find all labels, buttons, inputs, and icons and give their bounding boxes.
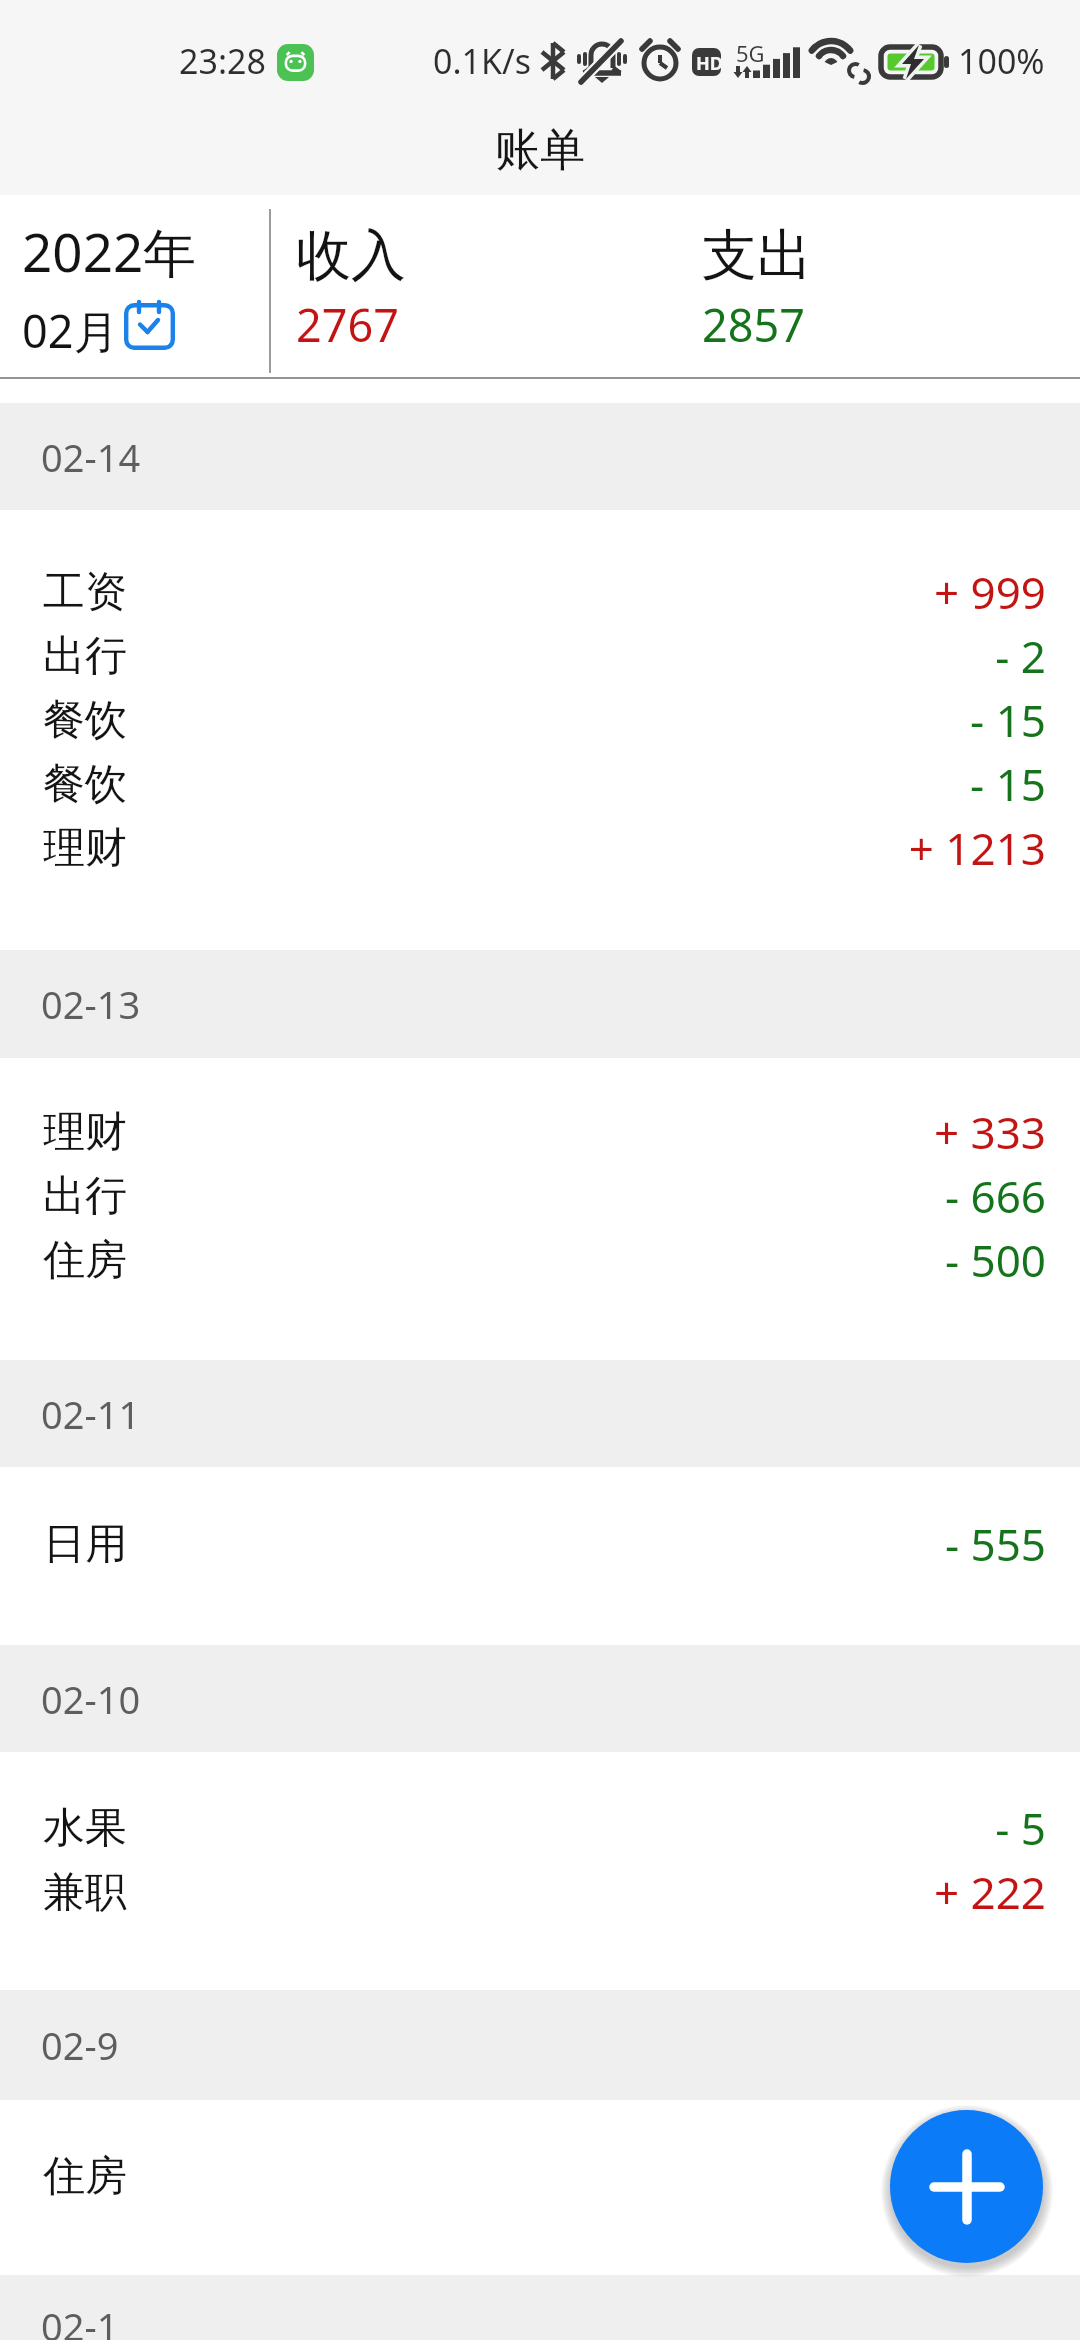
staticText: 日用 (43, 1518, 127, 1571)
button[interactable]: 工资 (0, 560, 1080, 624)
staticText: 餐饮 (43, 694, 127, 747)
staticText: - 555 (128, 1514, 1046, 1574)
button[interactable]: 出行 (0, 1164, 1080, 1228)
staticText: - 500 (128, 1230, 1046, 1290)
staticText: 餐饮 (43, 758, 127, 811)
button[interactable]: 日用 (0, 1512, 1080, 1576)
staticText: + 333 (128, 1102, 1046, 1162)
button[interactable]: 02-11 (0, 1360, 1080, 1467)
staticText: 2767 (296, 294, 399, 355)
button[interactable]: 02-1 (0, 2275, 1080, 2340)
button[interactable]: 02-10 (0, 1645, 1080, 1752)
staticText: 水果 (43, 1802, 127, 1855)
staticText: 02-1 (41, 2300, 119, 2340)
staticText: HD (696, 51, 723, 76)
staticText: 住房 (43, 2150, 127, 2203)
staticText: - 15 (128, 754, 1046, 814)
staticText: 理财 (43, 822, 127, 875)
button[interactable]: 餐饮 (0, 688, 1080, 752)
staticText: 2857 (702, 294, 805, 355)
button[interactable]: 02-14 (0, 403, 1080, 510)
staticText: 住房 (43, 1234, 127, 1287)
staticText: 100% (958, 38, 1045, 84)
button[interactable]: 02-13 (0, 950, 1080, 1058)
button[interactable]: 水果 (0, 1796, 1080, 1860)
staticText: 2022年 (22, 215, 197, 287)
button[interactable]: 兼职 (0, 1860, 1080, 1924)
staticText: 理财 (43, 1106, 127, 1159)
staticText: 工资 (43, 566, 127, 619)
staticText: - 5 (128, 1798, 1046, 1858)
staticText: 02-11 (41, 1388, 141, 1440)
staticText (128, 2146, 1046, 2206)
staticText: 出行 (43, 630, 127, 683)
staticText: 02-9 (41, 2019, 119, 2071)
staticText: 02-10 (41, 1673, 141, 1725)
button[interactable]: Add record (890, 2110, 1043, 2263)
staticText: 5G (736, 38, 765, 68)
staticText: + 999 (128, 562, 1046, 622)
staticText: 23:28 (179, 38, 266, 84)
button[interactable]: 理财 (0, 816, 1080, 880)
staticText: 出行 (43, 1170, 127, 1223)
staticText: 收入 (296, 221, 406, 290)
staticText: 账单 (495, 122, 585, 179)
staticText: 兼职 (43, 1866, 127, 1919)
staticText: 02月 (22, 300, 119, 361)
staticText: + 1213 (128, 818, 1046, 878)
staticText: - 15 (128, 690, 1046, 750)
staticText: - 2 (128, 626, 1046, 686)
button[interactable]: 02-9 (0, 1990, 1080, 2100)
staticText: 支出 (702, 221, 812, 290)
button[interactable]: 餐饮 (0, 752, 1080, 816)
button[interactable]: 住房 (0, 1228, 1080, 1292)
staticText: - 666 (128, 1166, 1046, 1226)
button[interactable]: Pick month (123, 302, 177, 356)
staticText: 02-13 (41, 978, 141, 1030)
button[interactable]: 理财 (0, 1100, 1080, 1164)
staticText: + 222 (128, 1862, 1046, 1922)
staticText: 0.1K/s (433, 38, 531, 84)
button[interactable]: 出行 (0, 624, 1080, 688)
button[interactable]: 住房 (0, 2144, 1080, 2208)
staticText: 02-14 (41, 431, 141, 483)
